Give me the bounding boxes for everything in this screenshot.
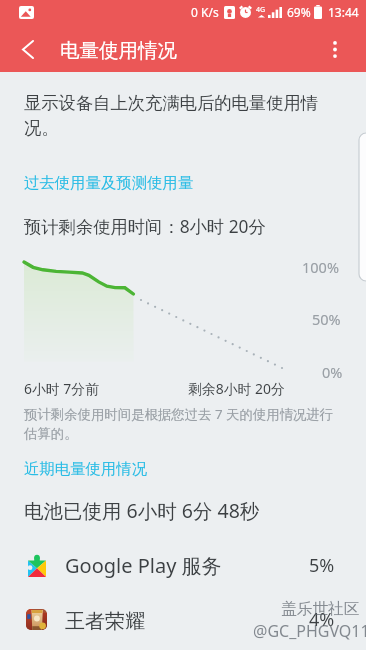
staticText: 剩余8小时 20分 [188,379,285,398]
staticText: 预计剩余使用时间是根据您过去 7 天的使用情况进行估算的。 [24,405,336,442]
staticText: 100% [302,257,339,277]
staticText: 0% [322,362,343,382]
button[interactable]: Back [4,25,52,73]
button[interactable]: 王者荣耀 [0,592,366,647]
staticText: 盖乐世社区 [281,599,360,619]
staticText: 预计剩余使用时间：8小时 20分 [24,215,266,239]
staticText: 6小时 7分前 [24,379,100,398]
staticText: 5% [309,553,335,578]
staticText: 王者荣耀 [65,609,145,634]
button[interactable]: More options [311,25,359,73]
staticText: 50% [312,309,341,329]
button[interactable]: Google Play 服务 [0,538,366,593]
staticText: 电量使用情况 [60,38,177,63]
staticText: 电池已使用 6小时 6分 48秒 [24,497,260,524]
staticText: @GC_PHGVQ11 [253,620,366,642]
staticText: 4% [309,607,335,632]
staticText: 显示设备自上次充满电后的电量使用情况。 [24,92,324,139]
staticText: Google Play 服务 [65,552,222,579]
staticText: 69% [287,4,311,20]
staticText: 近期电量使用情况 [24,459,148,478]
staticText: 0 K/s [191,4,219,20]
staticText: 过去使用量及预测使用量 [24,173,194,192]
staticText: 13:44 [328,4,359,20]
staticText: 4G [256,5,266,15]
